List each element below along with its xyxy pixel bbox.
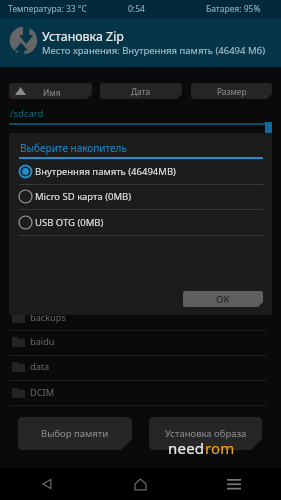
button[interactable]: Установка образа <box>149 417 262 450</box>
staticText: Температура: 33 °C <box>8 3 87 15</box>
staticText: Батарея: 95% <box>206 3 261 15</box>
button[interactable]: Back <box>0 468 93 500</box>
staticText: 0:54 <box>128 3 145 15</box>
button[interactable]: DCIM <box>0 381 281 405</box>
staticText: DCIM <box>30 386 54 399</box>
button[interactable]: Выбор памяти <box>18 417 132 450</box>
button[interactable]: OK <box>183 291 263 307</box>
button[interactable]: Дата <box>100 83 182 99</box>
staticText: Размер <box>217 86 247 97</box>
staticText: Дата <box>131 86 151 97</box>
staticText: Внутренняя память (46494MB) <box>35 165 176 178</box>
staticText: /sdcard <box>10 107 44 120</box>
staticText: Установка Zip <box>42 28 124 45</box>
button[interactable]: Внутренняя память (46494MB) <box>9 159 272 184</box>
button[interactable]: Recent apps <box>187 468 281 500</box>
staticText: rom <box>205 438 235 458</box>
button[interactable]: backups <box>0 306 281 330</box>
staticText: Micro SD карта (0MB) <box>35 190 132 203</box>
staticText: Выбор памяти <box>41 427 109 440</box>
button[interactable]: Home <box>93 468 187 500</box>
button[interactable]: Размер <box>191 83 272 99</box>
button[interactable]: baidu <box>0 330 281 354</box>
staticText: USB OTG (0MB) <box>35 216 104 229</box>
button[interactable]: Имя <box>9 83 92 99</box>
staticText: Выберите накопитель <box>20 141 127 155</box>
button[interactable]: USB OTG (0MB) <box>9 210 272 235</box>
staticText: need <box>168 438 205 458</box>
button[interactable]: data <box>0 355 281 379</box>
staticText: OK <box>216 293 230 306</box>
staticText: Установка образа <box>165 427 247 440</box>
button[interactable]: Micro SD карта (0MB) <box>9 184 272 209</box>
staticText: Имя <box>43 87 61 98</box>
staticText: backups <box>30 311 66 324</box>
staticText: baidu <box>30 335 55 348</box>
staticText: Место хранения: Внутренняя память (46494… <box>42 44 266 57</box>
staticText: data <box>30 360 50 373</box>
